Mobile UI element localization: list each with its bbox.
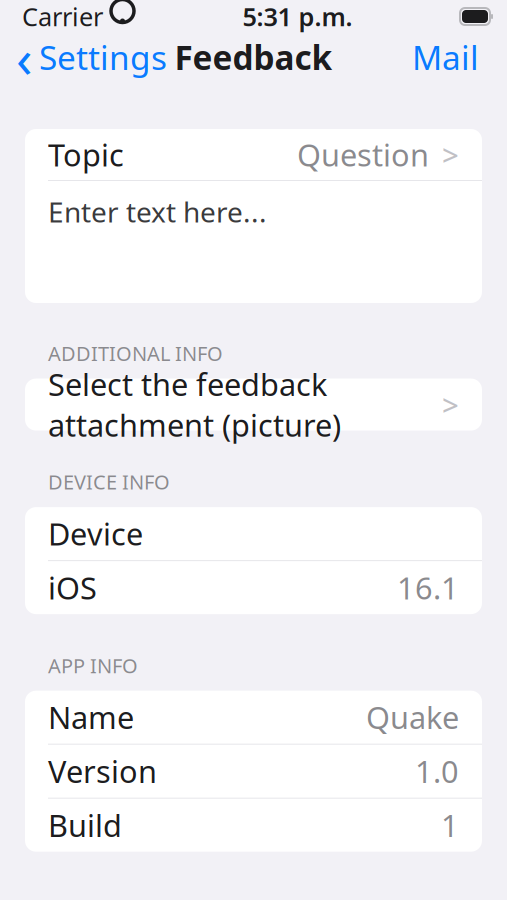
staticText: DEVICE INFO — [48, 469, 170, 495]
staticText: iOS — [48, 567, 97, 608]
staticText: ‹ — [16, 22, 33, 92]
button[interactable]: Select the feedback attachment (picture) — [25, 379, 482, 431]
staticText: > — [442, 135, 459, 174]
staticText: Select the feedback attachment (picture) — [48, 364, 341, 445]
staticText: Build — [48, 805, 122, 845]
staticText: Feedback — [174, 35, 332, 79]
staticText: 1.0 — [415, 751, 459, 791]
staticText: 16.1 — [397, 567, 459, 608]
button[interactable]: ‹ — [0, 34, 175, 80]
staticText: Mail — [412, 35, 479, 79]
staticText: APP INFO — [48, 652, 138, 679]
staticText: 1 — [441, 805, 459, 845]
staticText: Quake — [366, 697, 459, 737]
staticText: Carrier — [22, 0, 103, 33]
staticText: Version — [48, 751, 157, 791]
staticText: Question — [297, 134, 429, 175]
staticText: > — [442, 385, 459, 424]
button[interactable]: Mail — [398, 34, 493, 80]
staticText: ADDITIONAL INFO — [48, 340, 223, 367]
staticText: Name — [48, 697, 134, 737]
staticText: Enter text here... — [48, 193, 267, 230]
staticText: Device — [48, 513, 143, 554]
staticText: 5:31 p.m. — [242, 0, 352, 33]
staticText: Settings — [39, 35, 167, 79]
button[interactable]: Topic — [25, 129, 482, 180]
staticText: Topic — [48, 134, 124, 175]
staticText — [103, 0, 110, 33]
